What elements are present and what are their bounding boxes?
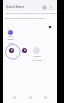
staticText: Looking [33, 55, 41, 58]
button[interactable]: Recents [42, 94, 49, 101]
button[interactable]: Searching [33, 47, 40, 54]
button[interactable]: Your device [8, 30, 13, 35]
staticText: Visible [8, 42, 14, 45]
button[interactable]: Nearby device [9, 48, 14, 53]
button[interactable]: Home [27, 94, 34, 101]
staticText: Make sure the other device is unlocked a… [5, 12, 58, 15]
button[interactable]: Help [42, 5, 47, 10]
button[interactable]: More options [48, 5, 53, 10]
button[interactable]: Device settings [48, 25, 52, 29]
staticText: Your device [5, 35, 16, 41]
staticText: Quick Share [6, 5, 25, 9]
staticText: Both devices need Bluetooth turned on [5, 17, 46, 20]
staticText: for devices [32, 59, 42, 62]
button[interactable]: Nearby device [22, 48, 27, 53]
button[interactable]: Back [11, 94, 18, 101]
